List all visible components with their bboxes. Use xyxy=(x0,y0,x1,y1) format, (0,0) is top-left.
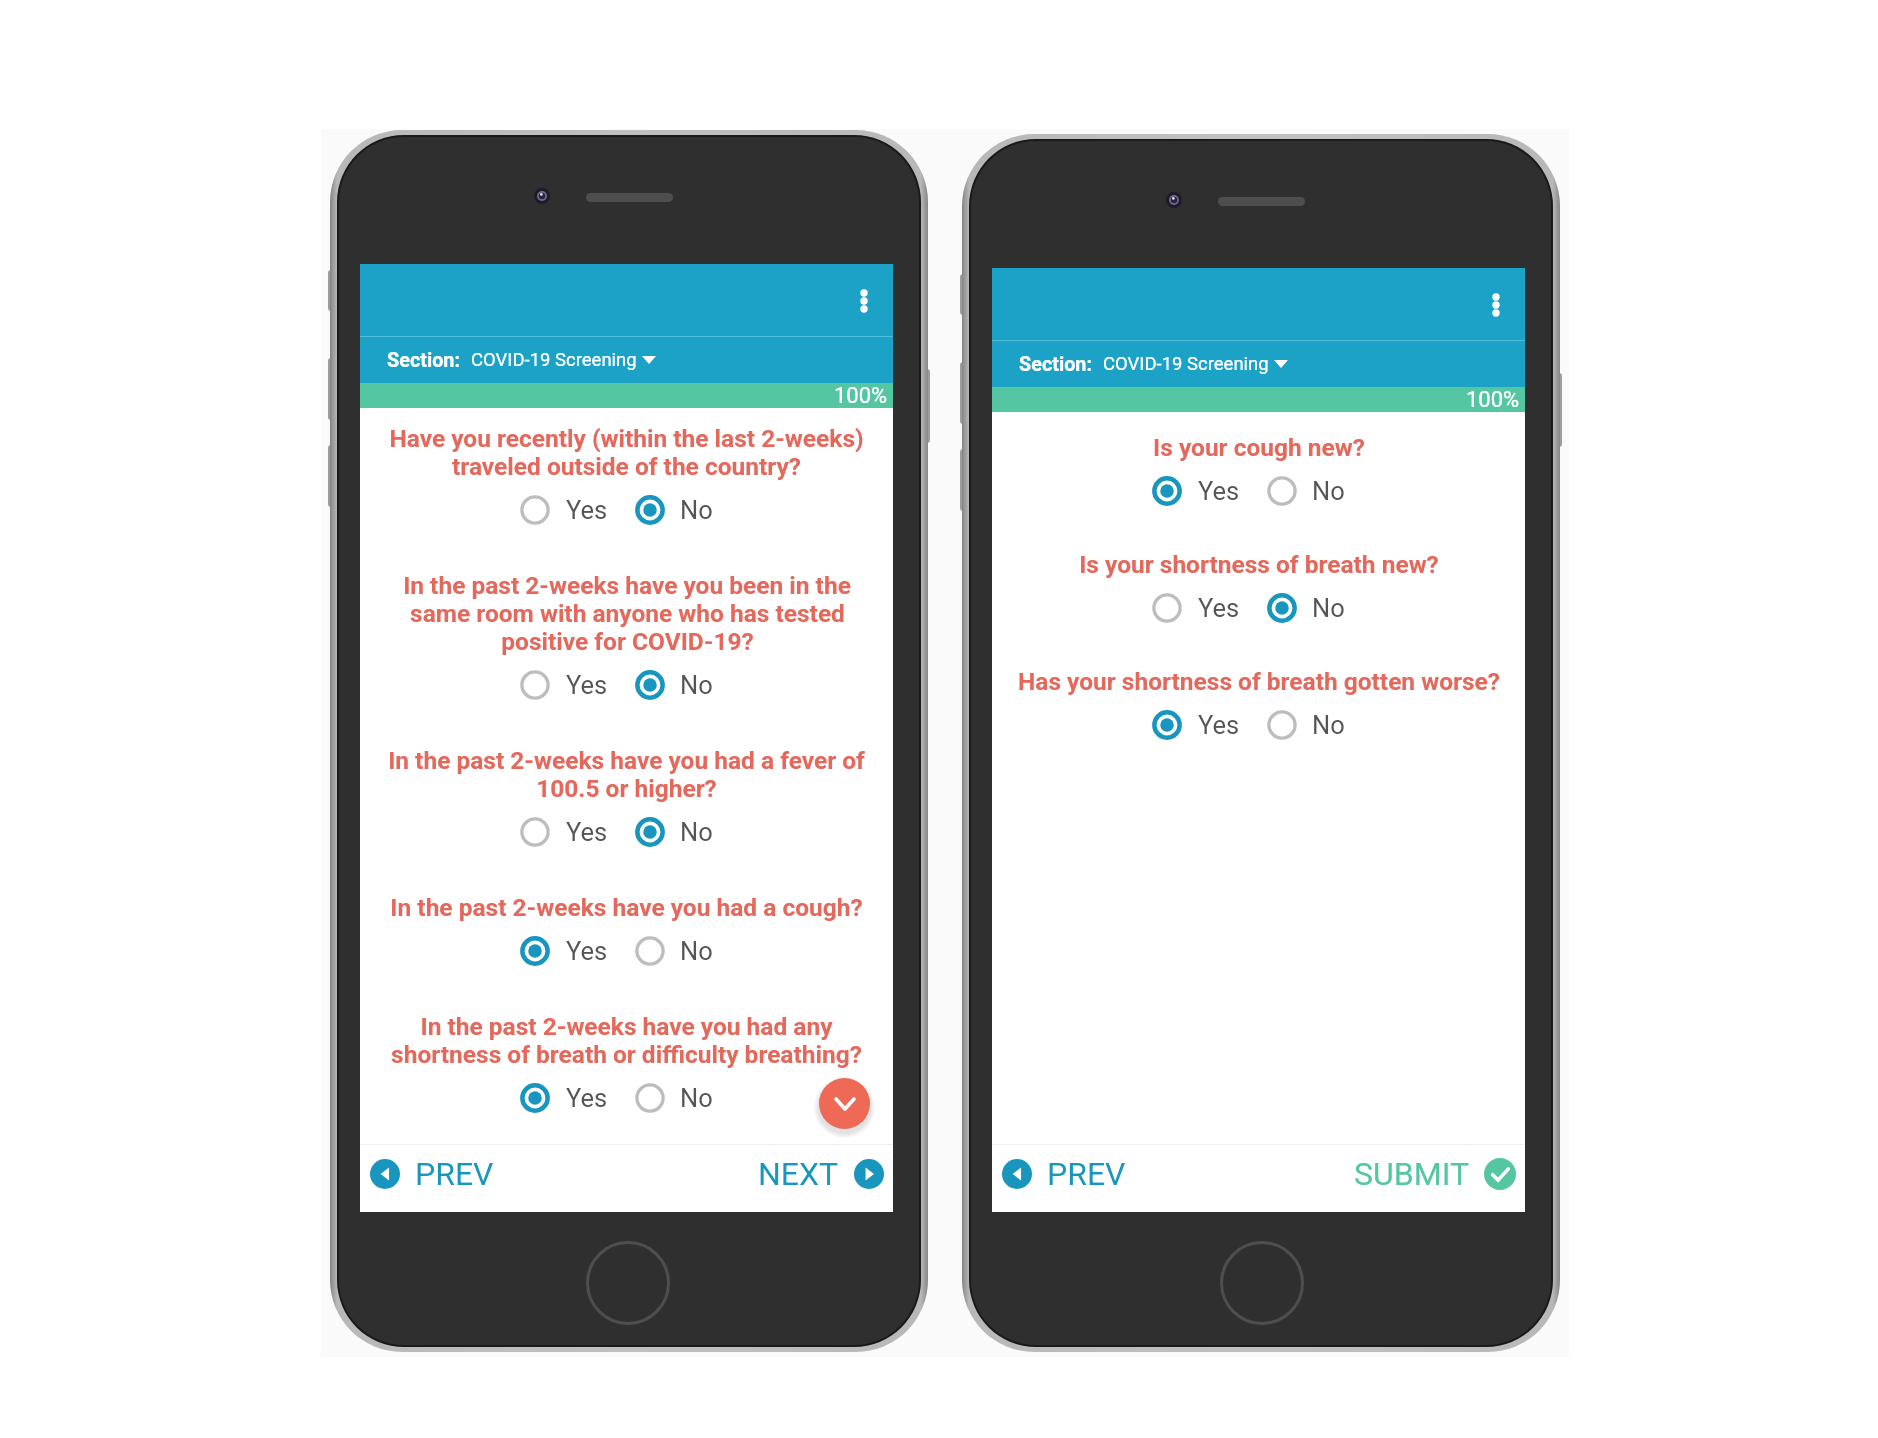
button[interactable]: No xyxy=(1267,593,1345,623)
button[interactable]: Yes xyxy=(520,1083,608,1113)
staticText: shortness of breath or difficulty breath… xyxy=(391,1040,862,1068)
staticText: Yes xyxy=(566,495,608,525)
staticText: PREV xyxy=(1047,1155,1126,1193)
staticText: No xyxy=(680,817,713,847)
staticText: No xyxy=(680,936,713,966)
other: Yes xyxy=(1152,710,1182,740)
other: No xyxy=(635,817,665,847)
staticText: positive for COVID-19? xyxy=(501,627,754,655)
button[interactable]: NEXT xyxy=(746,1145,893,1203)
button[interactable]: PREV xyxy=(360,1145,506,1203)
button[interactable]: Yes xyxy=(520,670,608,700)
staticText: Yes xyxy=(566,936,608,966)
staticText: No xyxy=(1312,710,1345,740)
other: No xyxy=(635,495,665,525)
button[interactable]: No xyxy=(635,1083,713,1113)
staticText: Has your shortness of breath gotten wors… xyxy=(1018,667,1500,695)
button[interactable]: Yes xyxy=(1152,593,1240,623)
other: Yes xyxy=(520,1083,550,1113)
other: Yes xyxy=(520,817,550,847)
staticText: Yes xyxy=(1198,593,1240,623)
staticText: No xyxy=(680,1083,713,1113)
other: No xyxy=(635,1083,665,1113)
button[interactable]: Yes xyxy=(1152,710,1240,740)
other: Yes xyxy=(520,495,550,525)
button[interactable]: Section: xyxy=(992,341,1525,387)
staticText: No xyxy=(1312,476,1345,506)
staticText: No xyxy=(680,670,713,700)
other: No xyxy=(1267,476,1297,506)
staticText: 100% xyxy=(1466,387,1520,412)
staticText: Yes xyxy=(1198,710,1240,740)
button[interactable]: Yes xyxy=(520,817,608,847)
button[interactable]: SUBMIT xyxy=(1342,1145,1525,1203)
staticText: COVID-19 Screening xyxy=(471,349,637,371)
staticText: PREV xyxy=(415,1155,494,1193)
staticText: In the past 2-weeks have you had a cough… xyxy=(390,893,863,921)
button[interactable]: No xyxy=(1267,476,1345,506)
staticText: traveled outside of the country? xyxy=(452,452,801,480)
other: Yes xyxy=(1152,593,1182,623)
staticText: In the past 2-weeks have you had any xyxy=(420,1012,833,1040)
button[interactable]: No xyxy=(635,817,713,847)
staticText: Yes xyxy=(566,817,608,847)
staticText: In the past 2-weeks have you had a fever… xyxy=(388,746,865,774)
button[interactable]: No xyxy=(1267,710,1345,740)
other: Yes xyxy=(520,936,550,966)
other: No xyxy=(635,670,665,700)
staticText: Yes xyxy=(566,1083,608,1113)
staticText: Section: xyxy=(387,349,460,372)
staticText: In the past 2-weeks have you been in the xyxy=(403,571,851,599)
other: Yes xyxy=(520,670,550,700)
button[interactable]: Yes xyxy=(1152,476,1240,506)
staticText: No xyxy=(1312,593,1345,623)
other: Yes xyxy=(1152,476,1182,506)
staticText: Have you recently (within the last 2-wee… xyxy=(389,424,864,452)
button[interactable]: PREV xyxy=(992,1145,1138,1203)
staticText: 100% xyxy=(834,383,888,408)
staticText: Is your shortness of breath new? xyxy=(1079,550,1439,578)
staticText: Is your cough new? xyxy=(1153,433,1365,461)
other: No xyxy=(1267,710,1297,740)
staticText: NEXT xyxy=(758,1155,839,1193)
staticText: same room with anyone who has tested xyxy=(410,599,845,627)
staticText: No xyxy=(680,495,713,525)
staticText: COVID-19 Screening xyxy=(1103,353,1269,375)
staticText: 100.5 or higher? xyxy=(536,774,717,802)
other: No xyxy=(1267,593,1297,623)
button[interactable]: Scroll down xyxy=(819,1078,870,1129)
button[interactable]: Yes xyxy=(520,495,608,525)
button[interactable]: No xyxy=(635,670,713,700)
staticText: SUBMIT xyxy=(1354,1155,1469,1193)
button[interactable]: Section: xyxy=(360,337,893,383)
staticText: Yes xyxy=(566,670,608,700)
staticText: Section: xyxy=(1019,353,1092,376)
button[interactable]: More options xyxy=(848,285,880,317)
button[interactable]: No xyxy=(635,936,713,966)
button[interactable]: Yes xyxy=(520,936,608,966)
button[interactable]: No xyxy=(635,495,713,525)
button[interactable]: More options xyxy=(1480,289,1512,321)
other: No xyxy=(635,936,665,966)
staticText: Yes xyxy=(1198,476,1240,506)
